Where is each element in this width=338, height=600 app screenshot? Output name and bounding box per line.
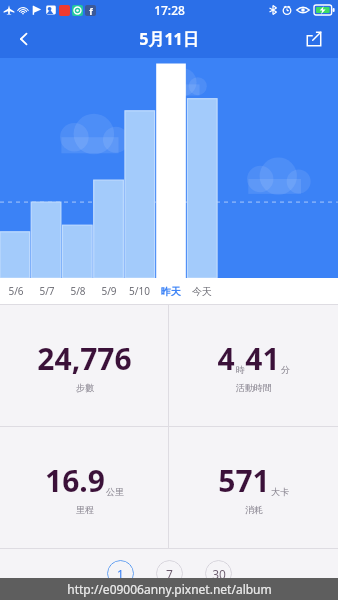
- staticText: 步數: [76, 382, 94, 393]
- staticText: 活動時間: [236, 382, 272, 393]
- staticText: 1: [117, 566, 124, 582]
- staticText: 消耗: [245, 504, 263, 515]
- button[interactable]: Back: [8, 23, 40, 55]
- staticText: 5/10: [129, 284, 150, 298]
- button[interactable]: 5/6: [0, 278, 31, 304]
- staticText: 41: [245, 338, 280, 379]
- staticText: 大卡: [271, 486, 289, 497]
- staticText: 5/8: [70, 284, 86, 298]
- staticText: 今天: [192, 285, 212, 298]
- staticText: f: [89, 5, 93, 16]
- staticText: 5/9: [101, 284, 117, 298]
- button[interactable]: 5/8: [62, 278, 93, 304]
- button[interactable]: 5/10: [124, 278, 155, 304]
- staticText: 16.9: [45, 460, 105, 501]
- button[interactable]: 今天: [186, 278, 217, 304]
- staticText: 公里: [106, 486, 124, 497]
- button[interactable]: Share: [298, 23, 330, 55]
- button[interactable]: 7: [156, 560, 183, 587]
- staticText: 5月11日: [139, 28, 199, 50]
- button[interactable]: 1: [107, 560, 134, 587]
- staticText: 571: [218, 460, 270, 501]
- staticText: 7: [166, 566, 173, 582]
- button[interactable]: 16.9: [0, 427, 168, 548]
- button[interactable]: 昨天: [155, 278, 186, 304]
- button[interactable]: 5/7: [31, 278, 62, 304]
- staticText: 30: [212, 566, 226, 582]
- button[interactable]: 571: [169, 427, 338, 548]
- button[interactable]: 4: [169, 305, 338, 426]
- button[interactable]: 24,776: [0, 305, 168, 426]
- staticText: http://e09006anny.pixnet.net/album: [67, 581, 272, 597]
- staticText: 17:28: [154, 2, 185, 18]
- staticText: 分: [281, 364, 290, 375]
- button[interactable]: 30: [205, 560, 232, 587]
- staticText: 24,776: [37, 338, 132, 379]
- staticText: 5/6: [8, 284, 24, 298]
- staticText: 4: [217, 338, 235, 379]
- staticText: 里程: [76, 504, 94, 515]
- staticText: 昨天: [161, 285, 181, 298]
- button[interactable]: 5/9: [93, 278, 124, 304]
- staticText: 時: [236, 364, 245, 375]
- staticText: 5/7: [39, 284, 55, 298]
